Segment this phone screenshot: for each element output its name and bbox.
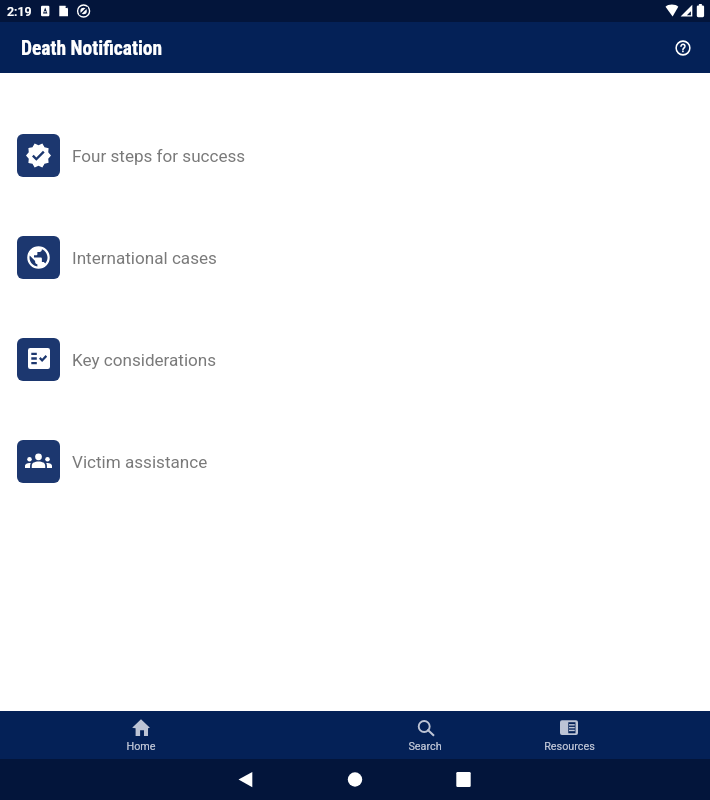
- staticText: Resources: [544, 740, 595, 753]
- staticText: Victim assistance: [72, 452, 208, 472]
- staticText: Four steps for success: [72, 146, 246, 166]
- staticText: 2:19: [7, 4, 32, 19]
- button[interactable]: Victim assistance: [0, 410, 710, 512]
- button[interactable]: Four steps for success: [0, 104, 710, 206]
- button[interactable]: International cases: [0, 206, 710, 308]
- staticText: Search: [408, 740, 442, 753]
- staticText: International cases: [72, 248, 217, 268]
- button[interactable]: Resources: [524, 711, 614, 759]
- staticText: Key considerations: [72, 350, 217, 370]
- staticText: Death Notification: [21, 37, 163, 60]
- staticText: Home: [126, 740, 156, 753]
- button[interactable]: Help: [666, 31, 700, 65]
- button[interactable]: Key considerations: [0, 308, 710, 410]
- button[interactable]: Search: [380, 711, 470, 759]
- button[interactable]: Home: [96, 711, 186, 759]
